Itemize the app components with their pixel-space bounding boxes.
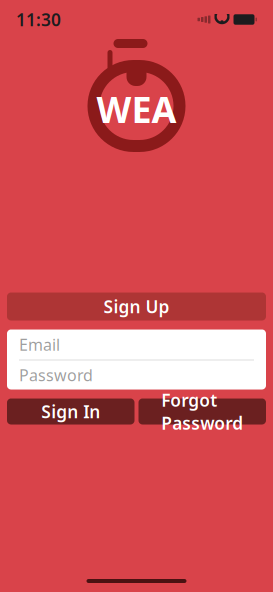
staticText: Sign In xyxy=(41,400,100,423)
staticText: Forgot Password xyxy=(161,388,243,434)
staticText: Password xyxy=(19,364,93,386)
button[interactable]: Forgot Password xyxy=(138,398,266,424)
staticText: Sign Up xyxy=(103,295,169,318)
staticText: Email xyxy=(19,334,60,355)
button[interactable]: Sign Up xyxy=(7,292,266,320)
button[interactable]: Password xyxy=(7,360,266,389)
button[interactable]: Email xyxy=(7,329,266,359)
button[interactable]: Sign In xyxy=(7,398,134,424)
staticText: 11:30 xyxy=(16,8,61,31)
staticText: WEA xyxy=(96,85,176,133)
